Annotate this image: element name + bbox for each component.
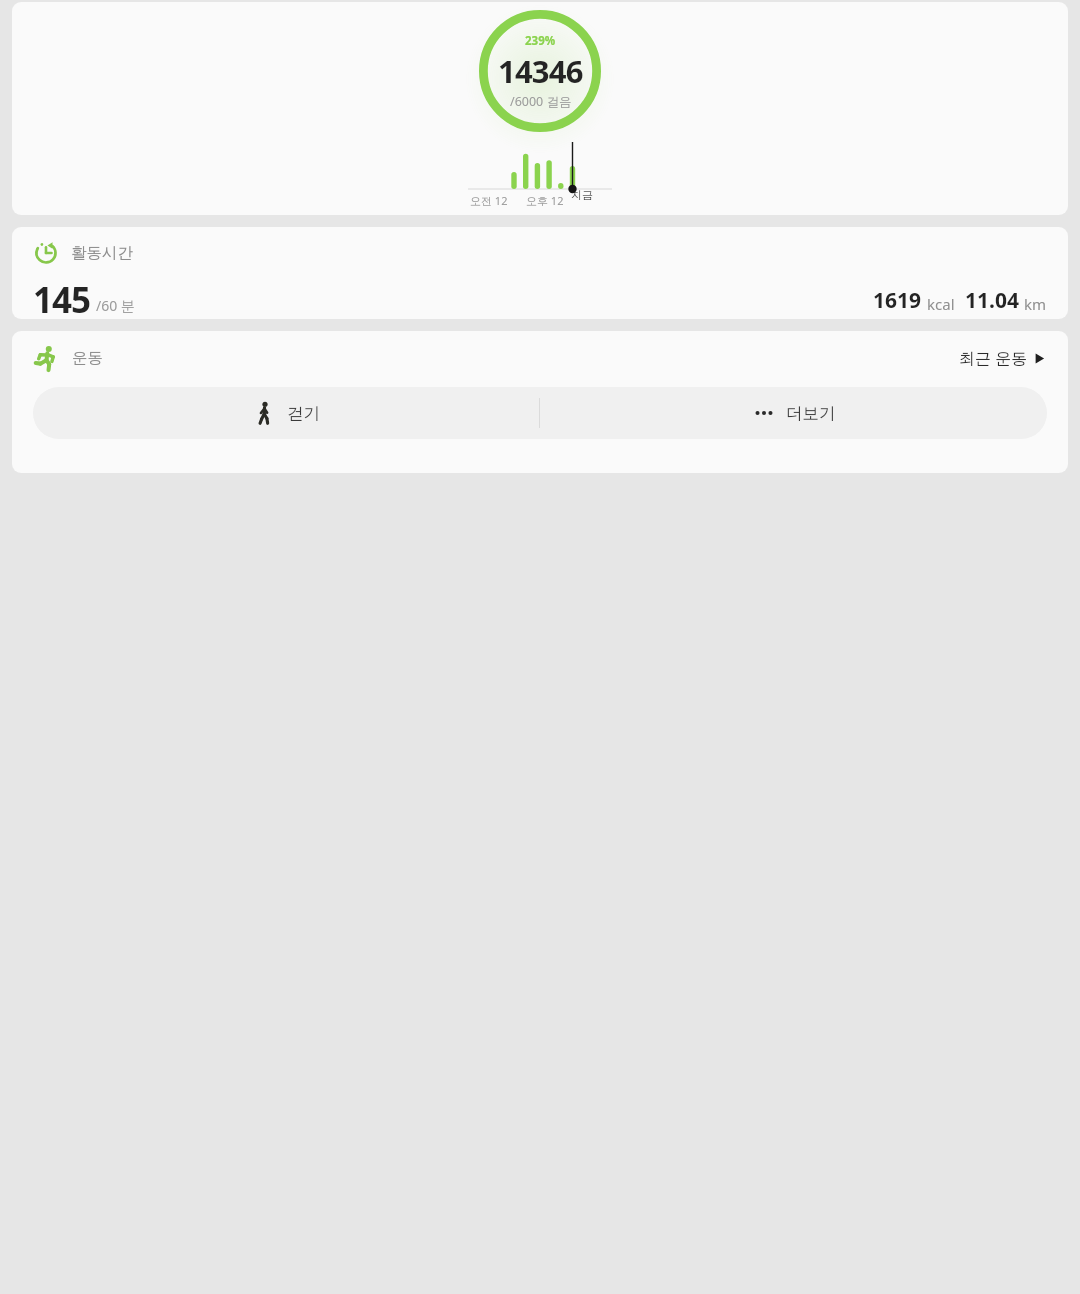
staticText: /60 분 <box>96 296 135 315</box>
staticText: 오전 12 <box>470 193 508 208</box>
staticText: km <box>1024 294 1047 314</box>
button[interactable]: 239% <box>12 2 1068 215</box>
button[interactable]: 최근 운동 <box>957 342 1047 374</box>
staticText: 239% <box>525 33 556 49</box>
staticText: 오후 12 <box>526 193 564 208</box>
staticText: kcal <box>927 294 955 314</box>
staticText: 더보기 <box>786 403 836 424</box>
staticText: 14346 <box>498 50 583 92</box>
staticText: 145 <box>33 276 91 319</box>
staticText: 지금 <box>571 188 593 202</box>
button[interactable]: 활동시간 <box>12 227 1068 319</box>
other: More options <box>752 401 776 425</box>
staticText: 활동시간 <box>71 243 133 263</box>
button[interactable]: More options <box>540 387 1047 439</box>
staticText: 1619 <box>873 286 922 315</box>
staticText: 최근 운동 <box>959 347 1028 369</box>
staticText: 걷기 <box>287 403 320 424</box>
staticText: 11.04 <box>965 286 1019 315</box>
staticText: 운동 <box>72 348 103 368</box>
button[interactable]: 걷기 <box>33 387 539 439</box>
staticText: /6000 걸음 <box>510 93 572 110</box>
